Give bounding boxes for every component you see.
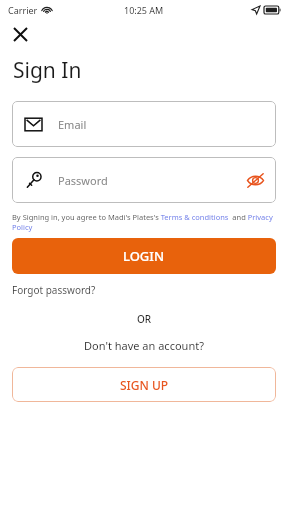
- staticText: Don't have an account?: [0, 338, 288, 353]
- staticText: 10:25 AM: [124, 4, 164, 16]
- button[interactable]: LOGIN: [12, 238, 276, 274]
- button[interactable]: Close: [6, 20, 34, 48]
- staticText: By Signing in, you agree to Madi's Plate…: [12, 212, 276, 232]
- staticText: Forgot password?: [12, 283, 96, 297]
- staticText: Carrier: [8, 4, 38, 16]
- staticText: Email: [58, 117, 87, 132]
- button[interactable]: Forgot password?: [12, 283, 96, 297]
- staticText: LOGIN: [123, 247, 165, 265]
- button[interactable]: Show password: [242, 167, 268, 193]
- button[interactable]: Password: [12, 157, 276, 203]
- button[interactable]: Email: [12, 101, 276, 147]
- staticText: Password: [58, 173, 108, 188]
- staticText: SIGN UP: [120, 377, 169, 393]
- staticText: OR: [0, 312, 288, 326]
- staticText: Sign In: [13, 56, 82, 85]
- button[interactable]: SIGN UP: [12, 367, 276, 402]
